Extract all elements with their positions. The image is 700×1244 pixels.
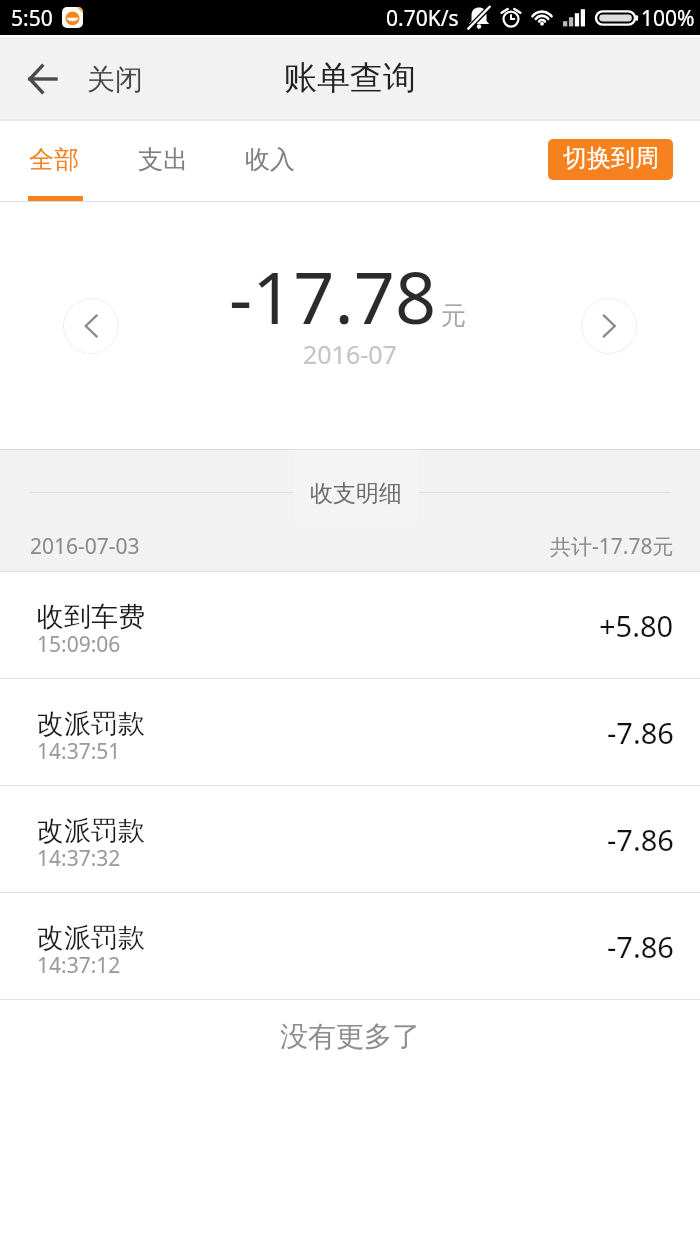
staticText: 支出 xyxy=(138,144,188,175)
staticText: 100% xyxy=(641,4,695,33)
staticText: 改派罚款 xyxy=(37,707,145,741)
button[interactable]: 全部 xyxy=(29,121,79,202)
button[interactable]: Back xyxy=(0,37,167,121)
staticText: -7.86 xyxy=(607,927,674,966)
staticText: 0.70K/s xyxy=(386,4,459,33)
staticText: 全部 xyxy=(29,144,79,175)
staticText: 切换到周 xyxy=(563,143,659,173)
staticText: 收到车费 xyxy=(37,600,145,634)
staticText: 元 xyxy=(441,300,466,331)
button[interactable]: 收到车费 xyxy=(0,572,700,678)
staticText: 2016-07 xyxy=(303,337,397,371)
staticText: 5:50 xyxy=(11,4,53,33)
staticText: -7.86 xyxy=(607,713,674,752)
staticText: 改派罚款 xyxy=(37,921,145,955)
button[interactable]: Previous month xyxy=(63,298,119,354)
button[interactable]: 改派罚款 xyxy=(0,893,700,999)
staticText: 关闭 xyxy=(87,62,143,97)
staticText: 14:37:32 xyxy=(37,844,121,873)
other: Back xyxy=(29,65,57,93)
staticText: 没有更多了 xyxy=(280,1019,420,1054)
button[interactable]: 收入 xyxy=(245,121,295,202)
staticText: 2016-07-03 xyxy=(30,532,140,561)
staticText: 账单查询 xyxy=(284,57,416,99)
button[interactable]: 改派罚款 xyxy=(0,786,700,892)
staticText: 改派罚款 xyxy=(37,814,145,848)
staticText: 收入 xyxy=(245,144,295,175)
button[interactable]: Next month xyxy=(581,298,637,354)
staticText: 收支明细 xyxy=(310,479,402,508)
staticText: 15:09:06 xyxy=(37,630,121,659)
button[interactable]: 切换到周 xyxy=(548,139,673,180)
staticText: 共计-17.78元 xyxy=(550,532,674,561)
staticText: 14:37:12 xyxy=(37,951,121,980)
staticText: +5.80 xyxy=(599,606,674,645)
button[interactable]: 支出 xyxy=(138,121,188,202)
staticText: -7.86 xyxy=(607,820,674,859)
staticText: 14:37:51 xyxy=(37,737,121,766)
button[interactable]: 改派罚款 xyxy=(0,679,700,785)
staticText: -17.78 xyxy=(229,247,437,345)
